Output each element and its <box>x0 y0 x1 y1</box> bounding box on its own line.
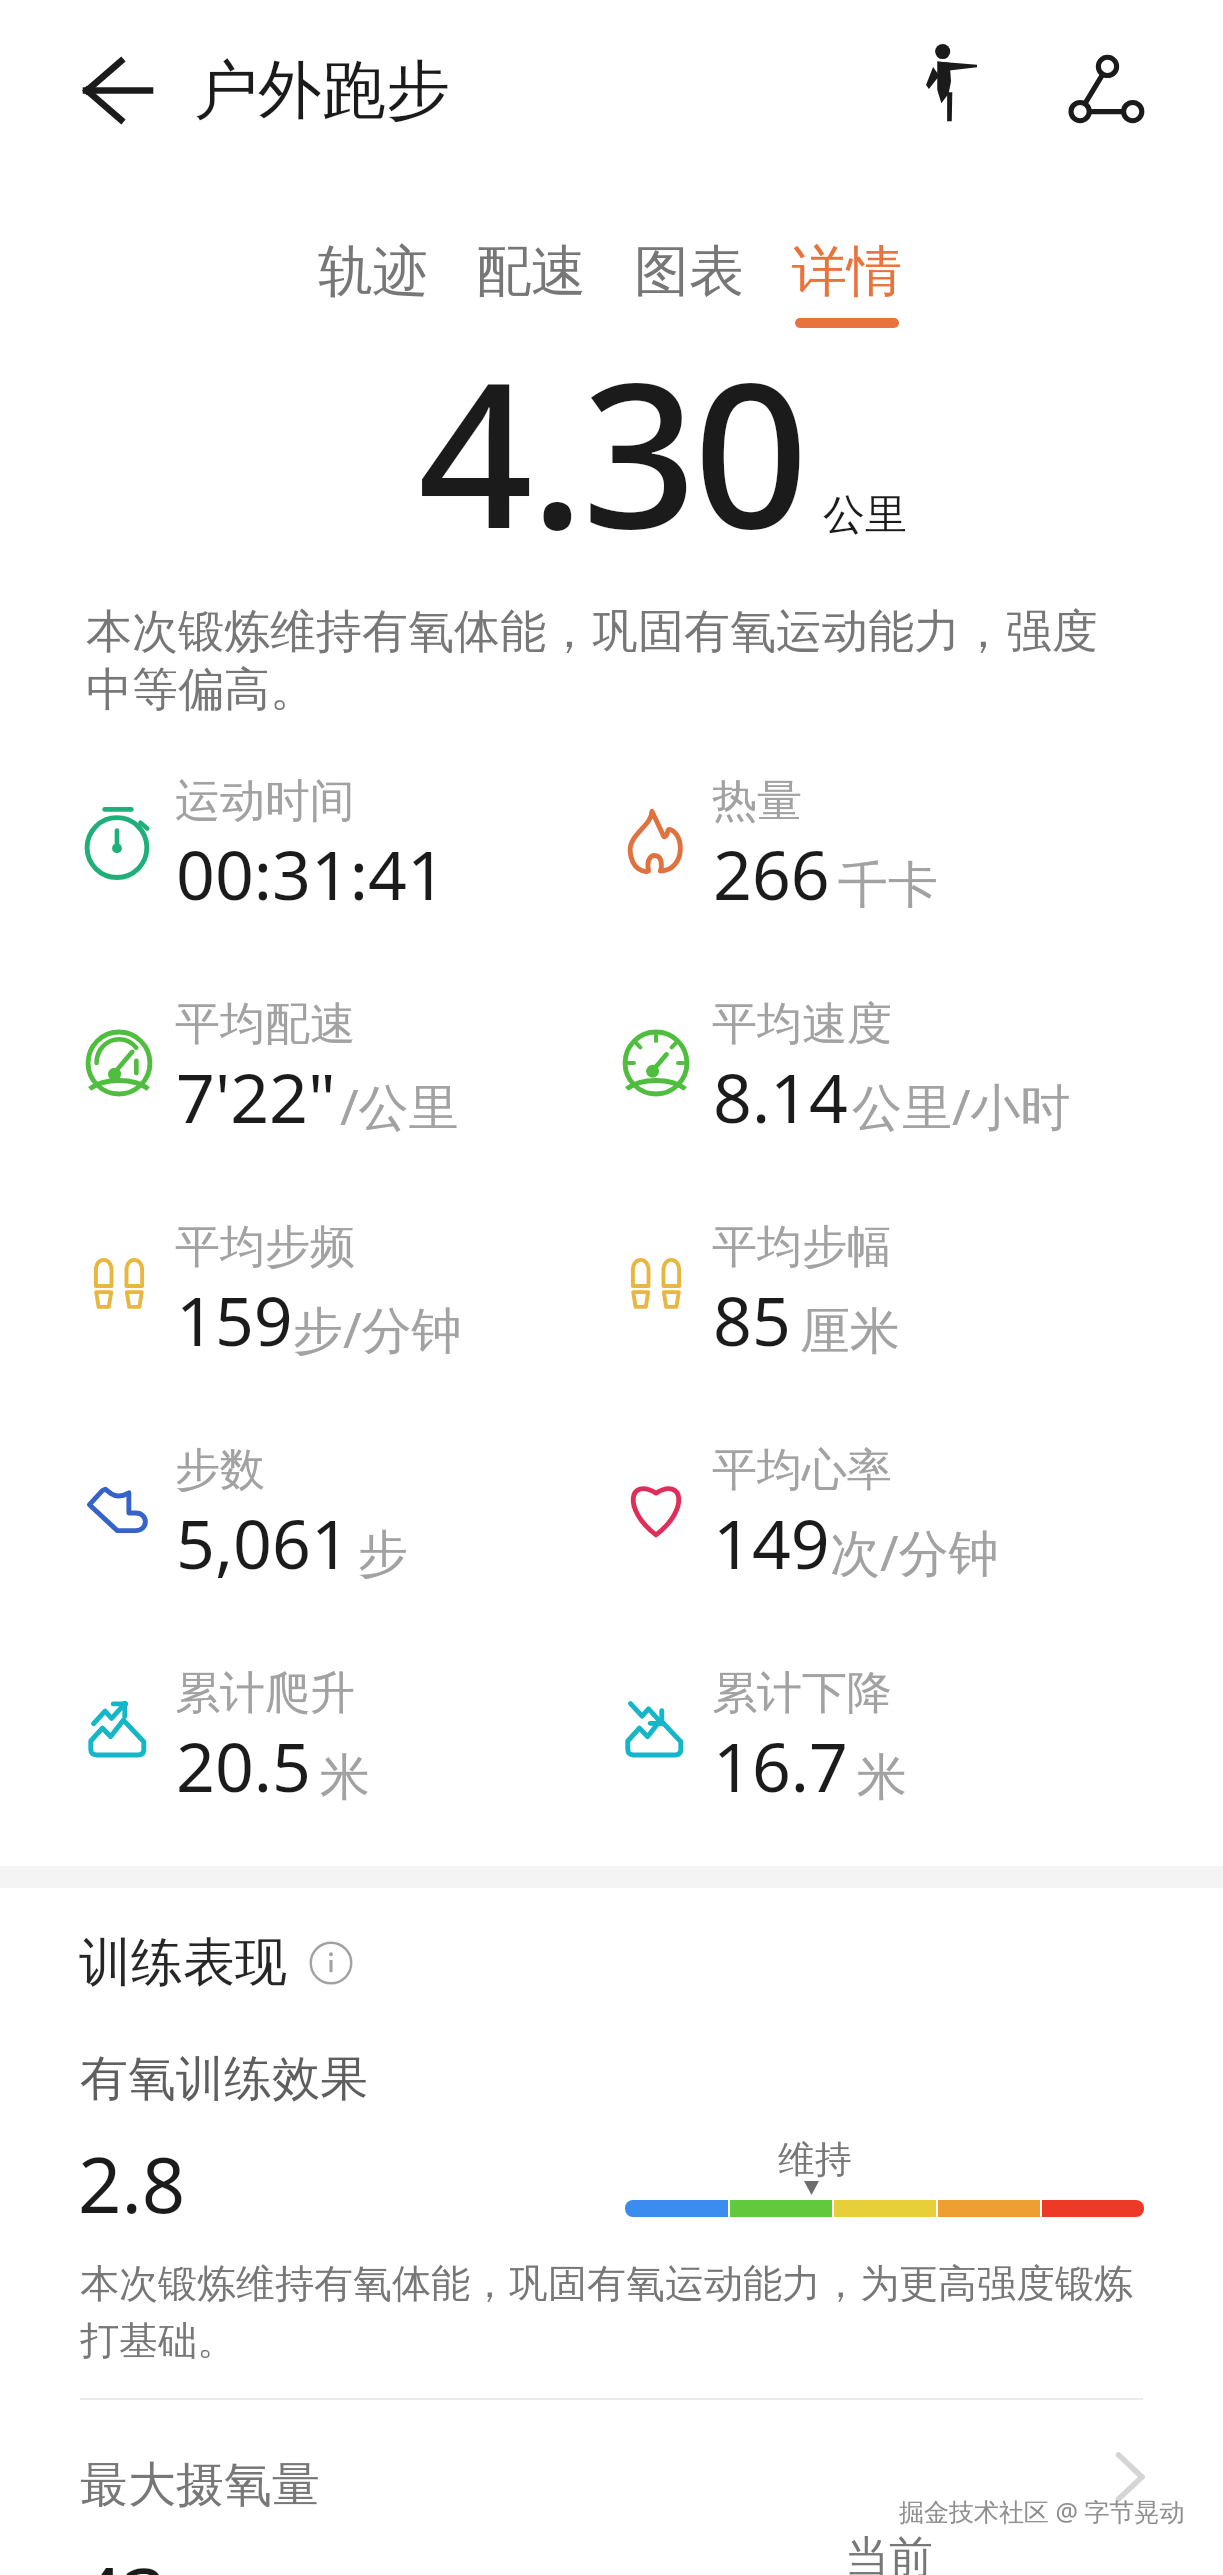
staticText: 266 <box>713 827 830 920</box>
button[interactable]: 配速 <box>452 237 610 318</box>
button[interactable]: Share <box>1051 33 1163 145</box>
staticText: 平均心率 <box>712 1442 892 1499</box>
staticText: 20.5 <box>176 1719 311 1812</box>
button[interactable]: Workout type <box>898 27 1010 139</box>
staticText: 当前 <box>845 2530 933 2575</box>
staticText: 00:31:41 <box>176 827 446 920</box>
button[interactable]: 训练表现 <box>79 1930 353 1996</box>
button[interactable]: 轨迹 <box>294 237 452 318</box>
staticText: 平均速度 <box>712 996 892 1053</box>
staticText: 步 <box>358 1523 408 1586</box>
staticText: 149 <box>713 1496 830 1589</box>
staticText: 85 <box>713 1273 791 1366</box>
staticText: 4.30 <box>418 313 806 587</box>
button[interactable]: 图表 <box>610 237 768 318</box>
staticText: 最大摄氧量 <box>80 2455 320 2515</box>
staticText: 7'22" <box>176 1050 336 1143</box>
staticText: 2.8 <box>78 2132 186 2236</box>
staticText: 步数 <box>175 1442 265 1499</box>
staticText: 5,061 <box>176 1496 350 1589</box>
button[interactable]: 最大摄氧量 <box>0 2400 1223 2575</box>
staticText: 千卡 <box>838 854 938 917</box>
staticText: 有氧训练效果 <box>80 2049 368 2109</box>
staticText: 次/分钟 <box>830 1518 999 1586</box>
staticText: 平均步幅 <box>712 1219 892 1276</box>
staticText: 43 <box>78 2542 168 2575</box>
staticText: 热量 <box>712 773 802 830</box>
staticText: 轨迹 <box>318 237 428 306</box>
button[interactable]: 详情 <box>768 237 926 328</box>
staticText: 159 <box>176 1273 293 1366</box>
staticText: 累计下降 <box>712 1665 892 1722</box>
button[interactable]: Back <box>52 46 182 134</box>
staticText: 本次锻炼维持有氧体能，巩固有氧运动能力，强度中等偏高。 <box>86 603 1111 719</box>
staticText: 公里/小时 <box>852 1072 1071 1140</box>
staticText: 步/分钟 <box>293 1295 462 1363</box>
staticText: /公里 <box>340 1072 459 1140</box>
staticText: 平均步频 <box>175 1219 355 1276</box>
staticText: 详情 <box>792 237 902 306</box>
staticText: 图表 <box>634 237 744 306</box>
staticText: 8.14 <box>713 1050 848 1143</box>
staticText: 米 <box>320 1746 370 1809</box>
staticText: 维持 <box>778 2136 852 2183</box>
staticText: 公里 <box>823 489 907 542</box>
staticText: 平均配速 <box>175 996 355 1053</box>
staticText: 掘金技术社区 @ 字节晃动 <box>899 2494 1185 2528</box>
staticText: 厘米 <box>800 1300 900 1363</box>
staticText: 米 <box>857 1746 907 1809</box>
staticText: 配速 <box>476 237 586 306</box>
staticText: 累计爬升 <box>175 1665 355 1722</box>
staticText: 16.7 <box>713 1719 848 1812</box>
staticText: 本次锻炼维持有氧体能，巩固有氧运动能力，为更高强度锻炼打基础。 <box>80 2259 1165 2366</box>
staticText: 运动时间 <box>175 773 355 830</box>
staticText: 训练表现 <box>79 1930 287 1996</box>
other: Info <box>309 1941 353 1985</box>
staticText: 户外跑步 <box>194 50 450 131</box>
